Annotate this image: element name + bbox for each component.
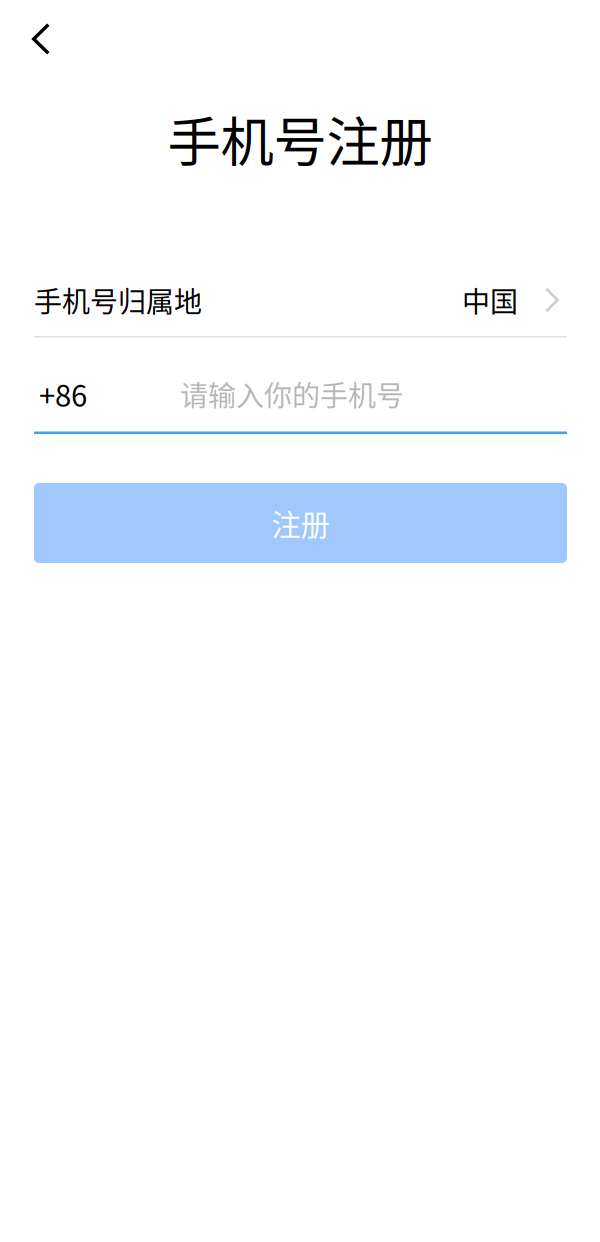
staticText: 中国 <box>462 280 518 320</box>
button[interactable]: Back <box>0 9 70 69</box>
staticText: +86 <box>39 373 87 415</box>
staticText: 注册 <box>271 502 329 544</box>
staticText: 手机号注册 <box>167 100 432 177</box>
button[interactable]: 注册 <box>34 483 567 563</box>
button[interactable]: +86 <box>39 365 567 423</box>
staticText: 手机号归属地 <box>34 280 202 320</box>
button[interactable]: 手机号归属地 <box>0 258 600 342</box>
staticText: 请输入你的手机号 <box>180 374 404 414</box>
